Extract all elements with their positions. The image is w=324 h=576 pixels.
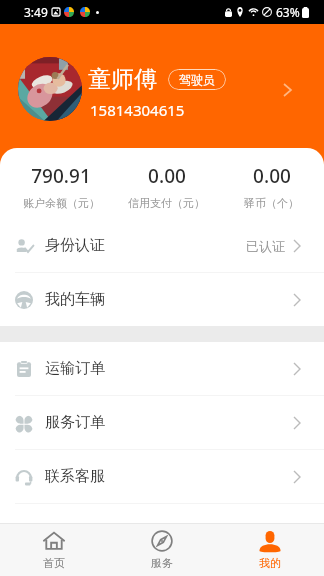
staticText: 15814304615: [90, 100, 185, 120]
button[interactable]: 首页: [0, 524, 108, 576]
staticText: 首页: [43, 556, 65, 570]
button[interactable]: 0.00: [114, 160, 219, 207]
staticText: 我的车辆: [45, 290, 105, 309]
staticText: 联系客服: [45, 467, 105, 486]
button[interactable]: 我的: [216, 524, 324, 576]
staticText: 0.00: [148, 163, 186, 189]
staticText: 0.00: [253, 163, 291, 189]
staticText: 信用支付（元）: [128, 196, 205, 210]
staticText: 服务订单: [45, 413, 105, 432]
staticText: 790.91: [31, 163, 91, 189]
staticText: 身份认证: [45, 236, 105, 255]
button[interactable]: 0.00: [219, 160, 324, 207]
button[interactable]: 身份认证: [0, 219, 324, 272]
button[interactable]: 服务: [108, 524, 216, 576]
staticText: 已认证: [246, 238, 285, 254]
staticText: 63%: [276, 4, 300, 20]
staticText: 童师傅: [88, 65, 157, 94]
staticText: 服务: [151, 556, 173, 570]
button[interactable]: 联系客服: [0, 450, 324, 503]
button[interactable]: 790.91: [8, 160, 114, 207]
button[interactable]: 我的车辆: [0, 273, 324, 326]
staticText: 账户余额（元）: [23, 196, 100, 210]
button[interactable]: 运输订单: [0, 342, 324, 395]
button[interactable]: 服务订单: [0, 396, 324, 449]
staticText: 运输订单: [45, 359, 105, 378]
button[interactable]: 童师傅: [0, 24, 324, 148]
staticText: 驿币（个）: [244, 196, 299, 210]
other: Profile details: [283, 83, 292, 97]
staticText: 我的: [259, 556, 281, 570]
staticText: 驾驶员: [179, 72, 215, 87]
staticText: 3:49: [24, 4, 48, 20]
